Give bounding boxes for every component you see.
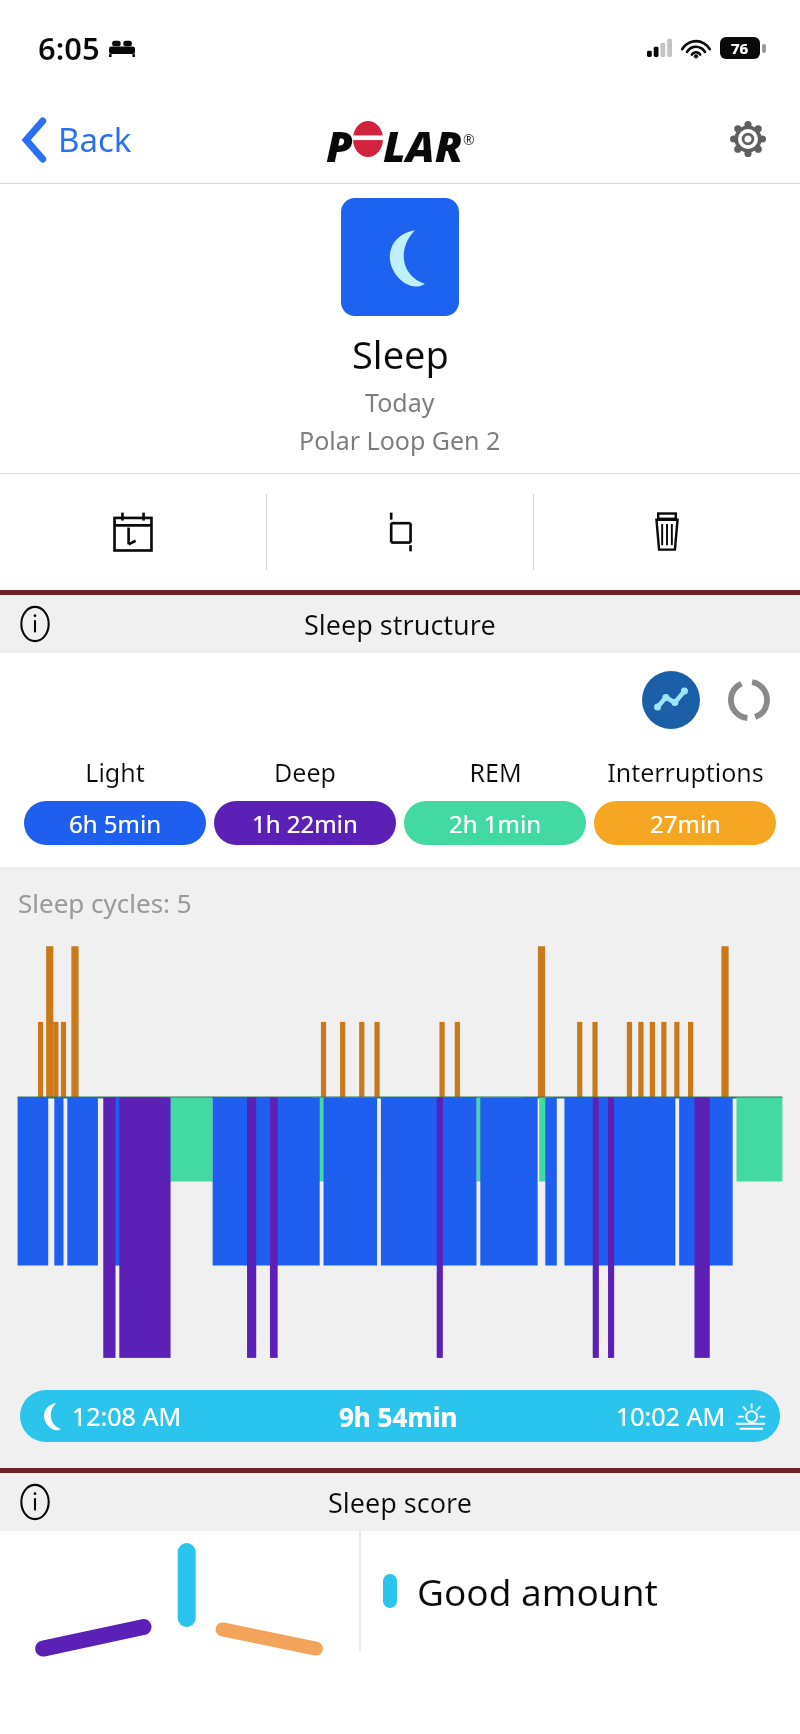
button[interactable]: Delete (534, 474, 800, 590)
button[interactable]: 27min (594, 801, 776, 845)
staticText: 6h 5min (69, 807, 161, 840)
staticText: P (326, 116, 353, 162)
button[interactable]: Good amount (361, 1531, 800, 1651)
staticText: 10:02 AM (616, 1399, 726, 1433)
staticText: Light (85, 755, 145, 789)
staticText: Sleep score (328, 1484, 472, 1521)
staticText: LAR (383, 116, 463, 162)
staticText: 9h 54min (339, 1399, 458, 1434)
staticText: 2h 1min (449, 807, 541, 840)
button[interactable]: Crop (267, 474, 533, 590)
button[interactable]: 2h 1min (404, 801, 586, 845)
staticText: Polar Loop Gen 2 (299, 423, 501, 457)
button[interactable]: 12:08 AM (20, 1390, 780, 1442)
button[interactable]: Sleep score (0, 1473, 800, 1531)
staticText: 6:05 (38, 27, 100, 69)
staticText: Sleep (352, 328, 449, 380)
button[interactable] (0, 940, 800, 1360)
button[interactable]: Info Sleep score (14, 1481, 56, 1523)
button[interactable]: 6h 5min (24, 801, 206, 845)
staticText: 27min (650, 807, 721, 840)
button[interactable]: 1h 22min (214, 801, 396, 845)
button[interactable]: Calendar (0, 474, 266, 590)
staticText: Sleep cycles: 5 (18, 885, 192, 920)
button[interactable]: Sleep structure (0, 595, 800, 653)
button[interactable]: Settings (726, 117, 770, 161)
staticText: Today (365, 385, 435, 419)
button[interactable]: Info Sleep structure (14, 603, 56, 645)
button[interactable]: Graph view (642, 671, 700, 729)
button[interactable]: Back (18, 109, 138, 170)
staticText: 1h 22min (252, 807, 358, 840)
button[interactable]: Sleep (341, 198, 459, 316)
staticText: Good amount (417, 1566, 658, 1616)
staticText: Interruptions (607, 755, 764, 789)
staticText: Deep (274, 755, 336, 789)
button[interactable]: Ring view (724, 675, 774, 725)
staticText: Back (58, 117, 132, 162)
staticText: 12:08 AM (72, 1399, 182, 1433)
staticText: ® (463, 130, 475, 149)
staticText: 76 (731, 38, 749, 58)
button[interactable] (0, 1531, 359, 1651)
staticText: Sleep structure (304, 606, 496, 643)
staticText: REM (469, 755, 522, 789)
